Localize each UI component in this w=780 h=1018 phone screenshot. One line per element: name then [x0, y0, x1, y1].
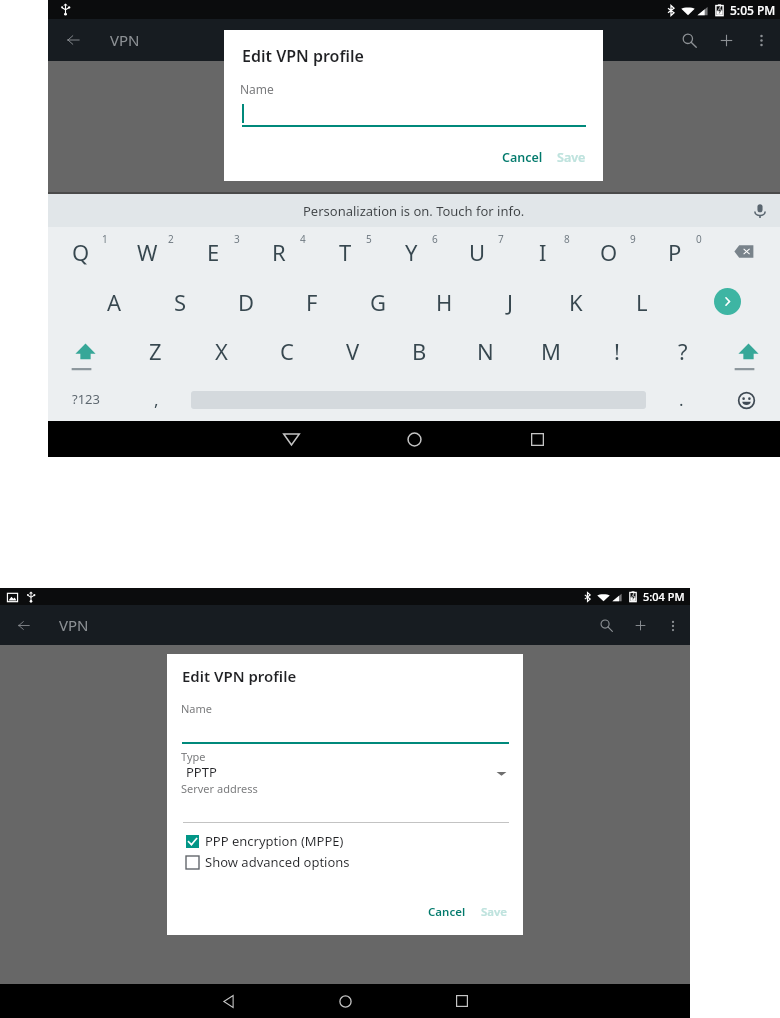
button[interactable]: D	[213, 276, 279, 325]
button[interactable]: Z	[122, 325, 188, 374]
button[interactable]: C	[254, 325, 320, 374]
button[interactable]: Q	[48, 227, 114, 276]
staticText: 5:04 PM	[643, 589, 685, 604]
staticText: 3	[234, 232, 240, 246]
staticText: Server address	[181, 781, 258, 796]
staticText: 6	[432, 232, 438, 246]
staticText: W	[137, 237, 158, 267]
button[interactable]: Cancel	[417, 896, 477, 928]
staticText: L	[636, 287, 648, 317]
button[interactable]: I	[510, 227, 576, 276]
staticText: Edit VPN profile	[182, 666, 297, 686]
staticText: 7	[498, 232, 504, 246]
button[interactable]: B	[386, 325, 452, 374]
button[interactable]: Voice input	[747, 198, 773, 224]
button[interactable]: M	[518, 325, 584, 374]
button[interactable]: S	[147, 276, 213, 325]
button[interactable]: P	[642, 227, 708, 276]
button[interactable]: U	[444, 227, 510, 276]
button[interactable]: K	[543, 276, 609, 325]
button[interactable]: More options	[657, 610, 688, 641]
button[interactable]: Add VPN profile	[624, 609, 657, 642]
staticText: Save	[557, 149, 586, 166]
button[interactable]: Y	[378, 227, 444, 276]
staticText: G	[370, 287, 387, 317]
button[interactable]: Search	[670, 21, 708, 59]
button[interactable]: Personalization is on. Touch for info.	[48, 194, 780, 227]
button[interactable]: X	[188, 325, 254, 374]
button[interactable]: Delete	[708, 227, 780, 276]
button[interactable]: V	[320, 325, 386, 374]
staticText: 5	[366, 232, 372, 246]
staticText: Type	[181, 749, 206, 764]
staticText: ,	[154, 388, 159, 411]
button[interactable]: PPP encryption (MPPE)	[181, 829, 349, 853]
button[interactable]: Recent apps	[520, 422, 554, 456]
staticText: I	[539, 237, 547, 267]
staticText: Show advanced options	[205, 853, 350, 871]
button[interactable]: F	[279, 276, 345, 325]
staticText: O	[600, 237, 618, 267]
button[interactable]: Add VPN profile	[708, 22, 744, 58]
staticText: 9	[630, 232, 636, 246]
button[interactable]: J	[477, 276, 543, 325]
button[interactable]: H	[411, 276, 477, 325]
staticText: VPN	[59, 615, 89, 635]
button[interactable]: Home	[397, 422, 431, 456]
staticText: Save	[481, 904, 508, 920]
staticText: D	[238, 287, 255, 317]
staticText: Personalization is on. Touch for info.	[303, 202, 525, 220]
button[interactable]: N	[452, 325, 518, 374]
staticText: 4	[300, 232, 306, 246]
staticText: Q	[72, 237, 90, 267]
button[interactable]: ?123	[48, 374, 124, 421]
staticText: H	[436, 287, 453, 317]
button[interactable]: Home	[328, 984, 362, 1018]
button[interactable]: Hide keyboard	[274, 422, 308, 456]
staticText: 8	[564, 232, 570, 246]
button[interactable]: Search	[588, 607, 624, 643]
staticText: Cancel	[502, 149, 543, 166]
button[interactable]: Save	[470, 896, 519, 928]
button[interactable]: Back	[211, 984, 245, 1018]
staticText: A	[107, 287, 122, 317]
button[interactable]: Emoji	[716, 374, 780, 421]
staticText: 0	[696, 232, 702, 246]
button[interactable]: L	[609, 276, 675, 325]
button[interactable]: A	[81, 276, 147, 325]
button[interactable]: E	[180, 227, 246, 276]
button[interactable]: O	[576, 227, 642, 276]
button[interactable]: Recent apps	[445, 984, 479, 1018]
button[interactable]: !	[584, 325, 650, 374]
staticText: ?123	[72, 390, 100, 408]
staticText: Y	[405, 237, 418, 267]
staticText: F	[306, 287, 318, 317]
button[interactable]: Cancel	[490, 141, 555, 174]
button[interactable]: ?	[650, 325, 716, 374]
button[interactable]: G	[345, 276, 411, 325]
staticText: S	[174, 287, 187, 317]
staticText: E	[207, 237, 220, 267]
staticText: Z	[149, 336, 162, 366]
staticText: U	[469, 237, 486, 267]
button[interactable]: ,	[124, 374, 189, 421]
button[interactable]: Space	[191, 374, 646, 421]
staticText: P	[668, 237, 682, 267]
button[interactable]: Next	[675, 276, 780, 325]
button[interactable]: Shift	[716, 325, 780, 374]
button[interactable]: T	[312, 227, 378, 276]
button[interactable]: W	[114, 227, 180, 276]
button[interactable]: Navigate up	[10, 608, 44, 642]
staticText: K	[569, 287, 583, 317]
staticText: V	[346, 336, 360, 366]
button[interactable]: Shift	[48, 325, 122, 374]
staticText: N	[477, 336, 494, 366]
button[interactable]: Navigate up	[60, 22, 96, 58]
staticText: .	[679, 388, 684, 411]
button[interactable]: Show advanced options	[181, 850, 355, 874]
button[interactable]: More options	[744, 23, 778, 57]
button[interactable]: R	[246, 227, 312, 276]
button[interactable]: .	[646, 374, 716, 421]
button[interactable]: Save	[545, 141, 598, 174]
staticText: 1	[102, 232, 108, 246]
